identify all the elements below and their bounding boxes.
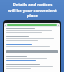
button[interactable]: Address bar [4, 23, 60, 27]
staticText: Details and notices will be your conveni… [8, 2, 57, 18]
